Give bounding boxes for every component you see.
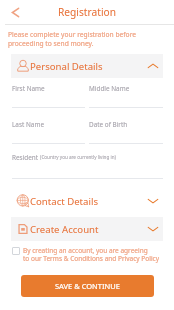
button[interactable]: Agree to terms and conditions [12,247,20,255]
button[interactable]: SAVE & CONTINUE [21,275,154,297]
button[interactable]: Personal Details [11,54,163,78]
button[interactable]: Contact Details [11,189,163,213]
staticText: Date of Birth [89,120,128,129]
staticText: Please complete your registration before… [8,30,137,48]
staticText: Resident [12,153,40,162]
staticText: Middle Name [89,84,130,93]
button[interactable]: Create Account [11,217,163,241]
staticText: SAVE & CONTINUE [55,281,120,291]
staticText: Contact Details [30,195,99,208]
button[interactable]: Back [7,4,23,20]
staticText: (Country you are currently living in) [40,154,116,160]
staticText: By creating an account, you are agreeing… [23,246,160,263]
staticText: First Name [12,84,45,93]
staticText: Personal Details [30,60,103,73]
staticText: Registration [0,5,174,19]
staticText: Last Name [12,120,44,129]
staticText: Create Account [30,223,99,236]
